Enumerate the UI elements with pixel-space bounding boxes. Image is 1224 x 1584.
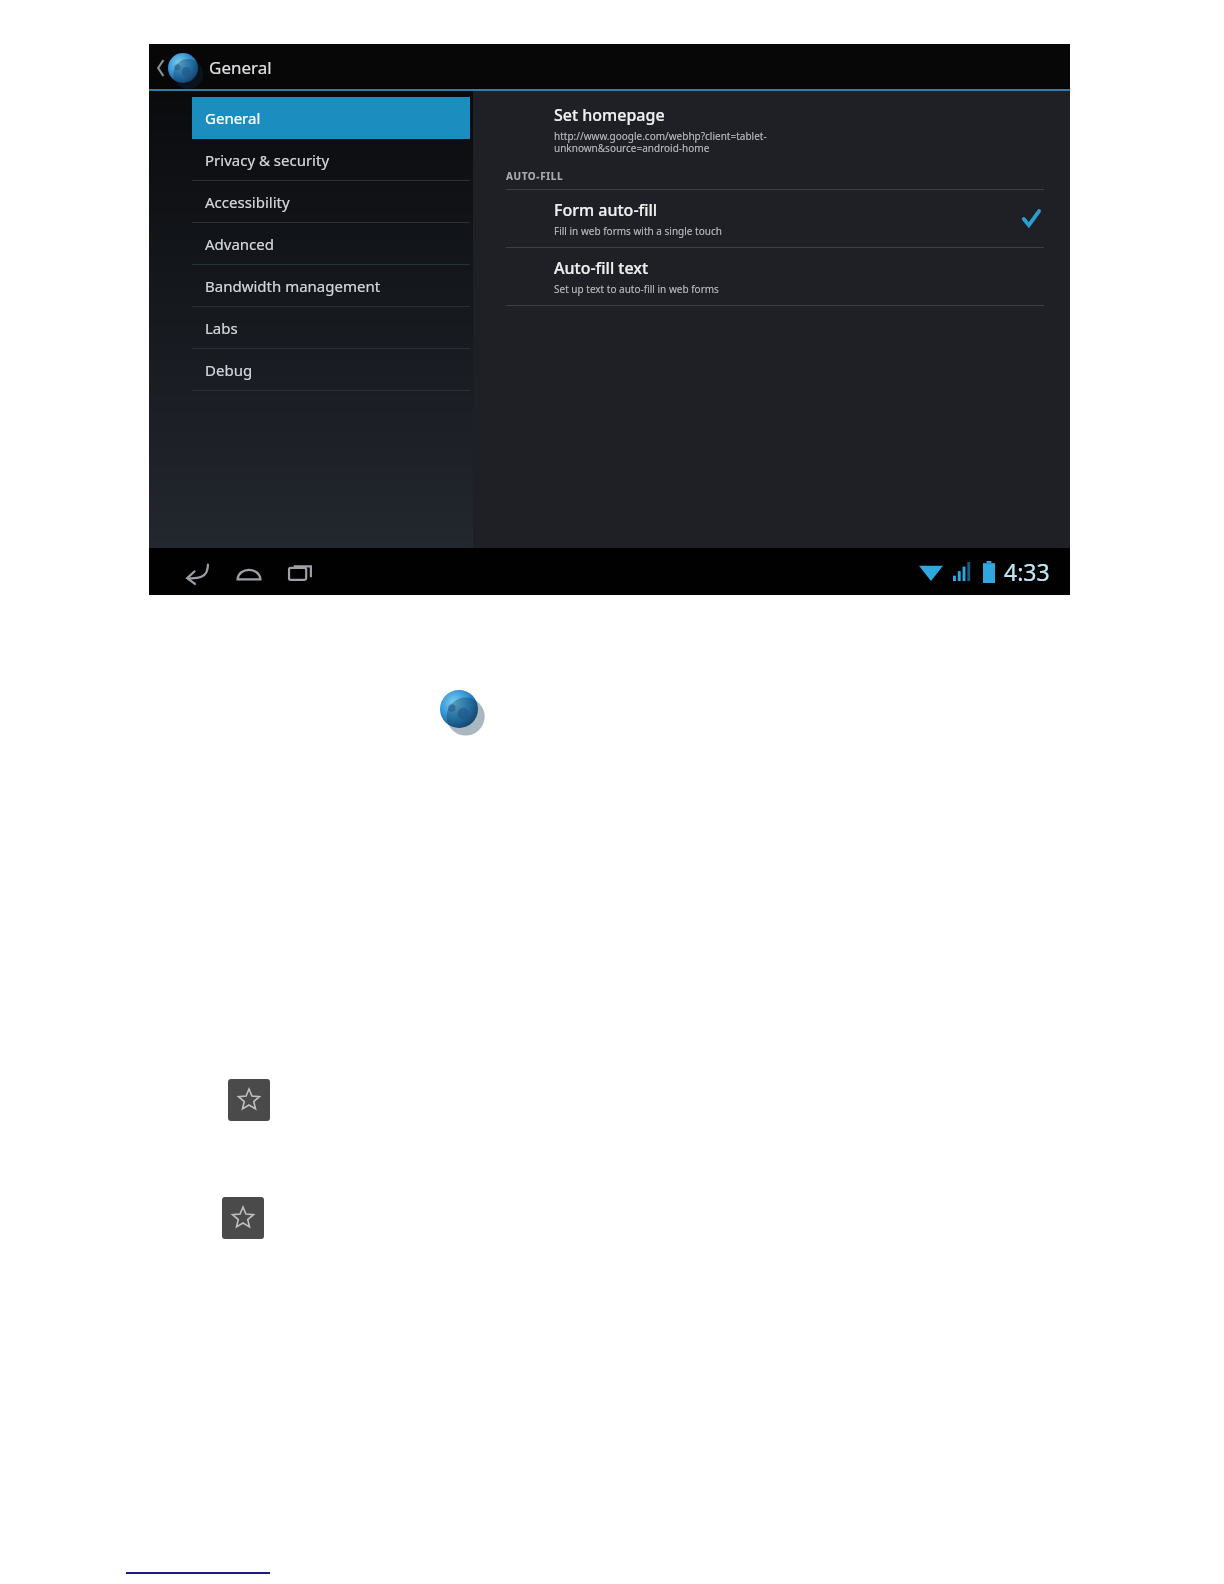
staticText: AUTO-FILL bbox=[506, 169, 564, 183]
button[interactable]: Back bbox=[171, 548, 223, 595]
button[interactable]: Debug bbox=[192, 349, 470, 391]
button[interactable]: Auto-fill text bbox=[506, 248, 1044, 305]
button[interactable]: Status bbox=[919, 556, 1050, 587]
staticText: Fill in web forms with a single touch bbox=[554, 224, 722, 238]
button[interactable]: Form auto-fill bbox=[506, 190, 1044, 247]
button[interactable]: Recent apps bbox=[275, 548, 327, 595]
staticText: Set up text to auto-fill in web forms bbox=[554, 282, 719, 296]
staticText: Debug bbox=[205, 360, 253, 380]
staticText: Labs bbox=[205, 318, 238, 338]
staticText: Auto-fill text bbox=[554, 257, 649, 279]
button[interactable]: General bbox=[192, 97, 470, 139]
button[interactable]: Bandwidth management bbox=[192, 265, 470, 307]
staticText: General bbox=[209, 56, 272, 79]
button[interactable]: Labs bbox=[192, 307, 470, 349]
button[interactable]: Privacy & security bbox=[192, 139, 470, 181]
button[interactable]: Home bbox=[223, 548, 275, 595]
staticText: Set homepage bbox=[554, 104, 665, 126]
staticText: Privacy & security bbox=[205, 150, 330, 170]
button[interactable]: Accessibility bbox=[192, 181, 470, 223]
button[interactable]: Set homepage bbox=[506, 104, 1044, 161]
staticText: 4:33 bbox=[1004, 556, 1050, 587]
staticText: General bbox=[205, 108, 261, 128]
staticText: Form auto-fill bbox=[554, 199, 658, 221]
button[interactable]: Back bbox=[155, 44, 199, 91]
button[interactable]: Advanced bbox=[192, 223, 470, 265]
button[interactable]: Bookmark bbox=[228, 1079, 270, 1121]
staticText: http://www.google.com/webhp?client=table… bbox=[554, 129, 767, 155]
staticText: Advanced bbox=[205, 234, 275, 254]
button[interactable]: Bookmark bbox=[222, 1197, 264, 1239]
staticText: Accessibility bbox=[205, 192, 290, 212]
staticText: Bandwidth management bbox=[205, 276, 381, 296]
